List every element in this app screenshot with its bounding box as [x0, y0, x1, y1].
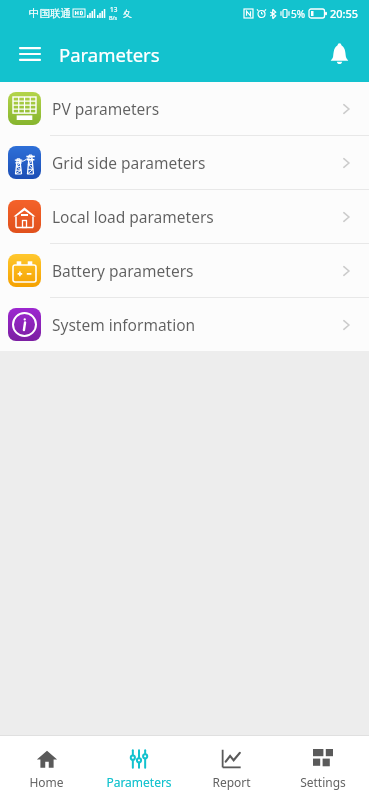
staticText: Settings: [300, 774, 346, 790]
staticText: Parameters: [106, 774, 172, 790]
button[interactable]: Settings: [277, 736, 369, 800]
staticText: Parameters: [59, 42, 160, 67]
staticText: 5%: [291, 7, 306, 21]
button[interactable]: PV parameters: [0, 82, 369, 135]
button[interactable]: Grid side parameters: [0, 136, 369, 189]
staticText: Home: [29, 774, 64, 790]
staticText: Battery parameters: [52, 260, 337, 281]
button[interactable]: Home: [0, 736, 93, 800]
button[interactable]: Report: [185, 736, 277, 800]
button[interactable]: Open navigation menu: [12, 36, 48, 72]
staticText: B/s: [109, 14, 118, 21]
button[interactable]: Battery parameters: [0, 244, 369, 297]
staticText: 13: [110, 5, 118, 14]
button[interactable]: System information: [0, 298, 369, 351]
staticText: 中国联通: [29, 7, 71, 20]
staticText: 夊: [123, 8, 132, 19]
button[interactable]: Notifications: [319, 34, 359, 74]
staticText: Local load parameters: [52, 206, 337, 227]
staticText: Report: [212, 774, 251, 790]
staticText: 20:55: [330, 6, 359, 21]
button[interactable]: Local load parameters: [0, 190, 369, 243]
staticText: System information: [52, 314, 337, 335]
staticText: Grid side parameters: [52, 152, 337, 173]
staticText: PV parameters: [52, 98, 337, 119]
button[interactable]: Parameters: [93, 736, 185, 800]
